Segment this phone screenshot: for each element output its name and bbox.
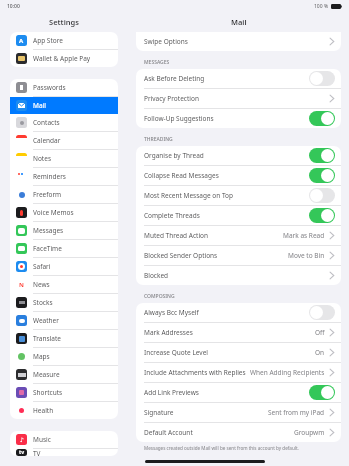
staticText: Blocked Sender Options — [144, 251, 218, 260]
button[interactable] — [309, 188, 335, 203]
staticText: Privacy Protection — [144, 94, 199, 103]
button[interactable]: Notes — [10, 150, 118, 168]
button[interactable]: Organise by Thread — [136, 146, 341, 166]
button[interactable] — [309, 148, 335, 163]
button[interactable]: Freeform — [10, 186, 118, 204]
staticText: Mark Addresses — [144, 328, 193, 337]
staticText: tv — [19, 449, 25, 456]
staticText: Collapse Read Messages — [144, 171, 219, 180]
staticText: Wallet & Apple Pay — [33, 54, 91, 63]
staticText: Messages created outside Mail will be se… — [144, 445, 299, 451]
staticText: Stocks — [33, 298, 53, 307]
staticText: Settings — [49, 17, 79, 27]
button[interactable]: Blocked Sender Options — [136, 246, 341, 266]
button[interactable]: Collapse Read Messages — [136, 166, 341, 186]
staticText: Most Recent Message on Top — [144, 191, 234, 200]
staticText: Signature — [144, 408, 174, 417]
staticText: Safari — [33, 262, 51, 271]
button[interactable] — [309, 385, 335, 400]
button[interactable]: Wallet & Apple Pay — [10, 50, 118, 67]
button[interactable]: Mail — [10, 97, 118, 114]
button[interactable]: Translate — [10, 330, 118, 348]
staticText: THREADING — [144, 136, 173, 143]
staticText: TV — [33, 449, 41, 456]
staticText: Swipe Options — [144, 37, 188, 46]
button[interactable]: Most Recent Message on Top — [136, 186, 341, 206]
staticText: Contacts — [33, 118, 60, 127]
button[interactable]: Muted Thread Action — [136, 226, 341, 246]
staticText: Groupwm — [294, 428, 325, 437]
button[interactable] — [309, 71, 335, 86]
button[interactable]: Mark Addresses — [136, 323, 341, 343]
button[interactable]: ♪ — [10, 431, 118, 449]
button[interactable]: Passwords — [10, 79, 118, 97]
staticText: On — [315, 348, 325, 357]
button[interactable]: Measure — [10, 366, 118, 384]
staticText: Music — [33, 435, 51, 444]
staticText: Complete Threads — [144, 211, 200, 220]
staticText: Organise by Thread — [144, 151, 204, 160]
staticText: Default Account — [144, 428, 193, 437]
button[interactable]: Increase Quote Level — [136, 343, 341, 363]
button[interactable]: Default Account — [136, 423, 341, 442]
staticText: Messages — [33, 226, 64, 235]
button[interactable]: Follow-Up Suggestions — [136, 109, 341, 128]
staticText: Mail — [231, 17, 247, 27]
button[interactable]: FaceTime — [10, 240, 118, 258]
staticText: App Store — [33, 36, 63, 45]
staticText: Blocked — [144, 271, 169, 280]
button[interactable]: tv — [10, 449, 118, 456]
button[interactable]: Include Attachments with Replies — [136, 363, 341, 383]
button[interactable]: Signature — [136, 403, 341, 423]
button[interactable]: Messages — [10, 222, 118, 240]
button[interactable]: Contacts — [10, 114, 118, 132]
button[interactable]: Safari — [10, 258, 118, 276]
button[interactable]: Weather — [10, 312, 118, 330]
staticText: ♪ — [20, 436, 24, 443]
button[interactable]: Always Bcc Myself — [136, 303, 341, 323]
button[interactable]: Shortcuts — [10, 384, 118, 402]
button[interactable]: Complete Threads — [136, 206, 341, 226]
staticText: A — [19, 37, 24, 45]
button[interactable]: Reminders — [10, 168, 118, 186]
staticText: Off — [315, 328, 325, 337]
staticText: Add Link Previews — [144, 388, 199, 397]
button[interactable] — [309, 168, 335, 183]
staticText: MESSAGES — [144, 59, 170, 66]
staticText: Follow-Up Suggestions — [144, 114, 214, 123]
button[interactable]: N — [10, 276, 118, 294]
button[interactable]: Health — [10, 402, 118, 419]
staticText: Sent from my iPad — [268, 408, 325, 417]
staticText: Always Bcc Myself — [144, 308, 199, 317]
button[interactable]: Maps — [10, 348, 118, 366]
button[interactable]: Voice Memos — [10, 204, 118, 222]
button[interactable]: Privacy Protection — [136, 89, 341, 109]
staticText: Weather — [33, 316, 59, 325]
button[interactable]: Ask Before Deleting — [136, 69, 341, 89]
staticText: FaceTime — [33, 244, 62, 253]
staticText: Measure — [33, 370, 60, 379]
staticText: Health — [33, 406, 54, 415]
staticText: COMPOSING — [144, 293, 175, 300]
button[interactable]: A — [10, 32, 118, 50]
staticText: Voice Memos — [33, 208, 74, 217]
staticText: Mail — [33, 101, 46, 110]
staticText: Ask Before Deleting — [144, 74, 205, 83]
button[interactable]: Add Link Previews — [136, 383, 341, 403]
button[interactable] — [309, 305, 335, 320]
button[interactable] — [309, 208, 335, 223]
staticText: When Adding Recipients — [250, 368, 325, 377]
staticText: Maps — [33, 352, 50, 361]
staticText: Increase Quote Level — [144, 348, 208, 357]
button[interactable]: Swipe Options — [136, 32, 341, 51]
staticText: Notes — [33, 154, 51, 163]
button[interactable]: Stocks — [10, 294, 118, 312]
staticText: Freeform — [33, 190, 62, 199]
staticText: Move to Bin — [288, 251, 325, 260]
button[interactable] — [309, 111, 335, 126]
staticText: Passwords — [33, 83, 66, 92]
button[interactable]: Blocked — [136, 266, 341, 285]
staticText: News — [33, 280, 50, 289]
staticText: Include Attachments with Replies — [144, 368, 246, 377]
button[interactable]: Calendar — [10, 132, 118, 150]
